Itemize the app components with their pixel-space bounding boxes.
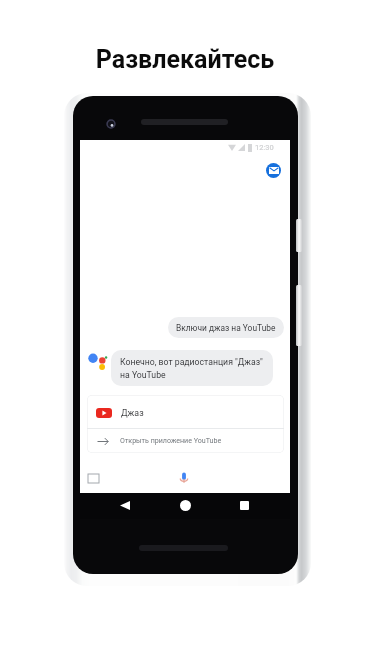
button[interactable]: Recent apps bbox=[240, 501, 249, 510]
button[interactable]: Конечно, вот радиостанция "Джаз" на YouT… bbox=[111, 350, 273, 386]
button[interactable]: Home bbox=[180, 500, 191, 511]
staticText: Развлекайтесь bbox=[0, 45, 370, 74]
button[interactable]: Джаз bbox=[87, 395, 284, 428]
button[interactable]: Messages bbox=[266, 163, 281, 178]
staticText: Включи джаз на YouTube bbox=[176, 323, 276, 333]
button[interactable]: Открыть приложение YouTube bbox=[87, 429, 284, 453]
button[interactable]: Keyboard bbox=[88, 474, 99, 483]
staticText: Джаз bbox=[121, 408, 144, 418]
staticText: Открыть приложение YouTube bbox=[120, 436, 222, 444]
staticText: Конечно, вот радиостанция "Джаз" на YouT… bbox=[120, 357, 263, 380]
button[interactable]: Microphone bbox=[176, 470, 192, 486]
button[interactable]: Включи джаз на YouTube bbox=[168, 317, 284, 338]
button[interactable]: Back bbox=[120, 501, 130, 510]
staticText: 12:30 bbox=[255, 143, 274, 152]
